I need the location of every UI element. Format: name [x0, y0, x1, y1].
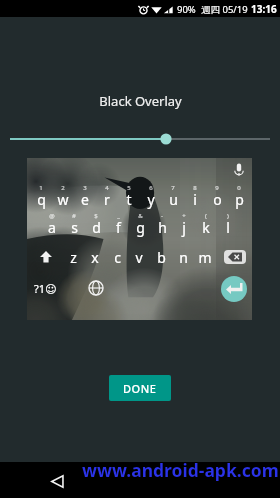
staticText: & — [138, 212, 143, 220]
staticText: d — [92, 218, 101, 237]
staticText: 9 — [215, 184, 219, 192]
staticText: f — [116, 218, 121, 237]
staticText: k — [202, 218, 210, 237]
staticText: 6 — [149, 184, 153, 192]
staticText: h — [158, 218, 167, 237]
staticText: l — [226, 218, 230, 237]
button[interactable]: Back — [51, 473, 75, 489]
staticText: w — [57, 190, 69, 209]
staticText: 週四 05/19 — [201, 3, 248, 16]
staticText: # — [72, 212, 76, 220]
staticText: 2 — [61, 184, 65, 192]
button[interactable] — [0, 129, 280, 149]
staticText: DONE — [123, 381, 157, 396]
staticText: t — [126, 190, 132, 209]
staticText: 5 — [127, 184, 131, 192]
staticText: ( — [205, 212, 207, 220]
staticText: n — [179, 248, 188, 267]
staticText: - — [161, 212, 163, 220]
staticText: j — [182, 218, 186, 237]
staticText: m — [198, 248, 212, 267]
staticText: 3 — [83, 184, 87, 192]
staticText: v — [135, 248, 143, 267]
staticText: r — [104, 190, 110, 209]
staticText: b — [157, 248, 166, 267]
staticText: a — [48, 218, 56, 237]
staticText: y — [147, 190, 155, 209]
staticText: o — [213, 190, 222, 209]
staticText: 8 — [193, 184, 197, 192]
staticText: p — [235, 190, 244, 209]
button[interactable]: DONE — [109, 375, 171, 401]
staticText: www.android-apk.com — [82, 458, 279, 482]
staticText: _ — [117, 212, 120, 220]
staticText: q — [37, 190, 46, 209]
staticText: e — [81, 190, 89, 209]
staticText: z — [70, 248, 77, 267]
staticText: 0 — [237, 184, 241, 192]
staticText: 90% — [177, 3, 196, 16]
staticText: s — [71, 218, 78, 237]
staticText: 4 — [105, 184, 109, 192]
staticText: @ — [49, 212, 55, 220]
button[interactable]: Keyboard preview — [27, 158, 252, 320]
staticText: $ — [94, 212, 98, 220]
staticText: i — [193, 190, 197, 209]
staticText: x — [91, 248, 99, 267]
staticText: 13:16 — [251, 2, 277, 16]
staticText: c — [114, 248, 121, 267]
staticText: ) — [227, 212, 229, 220]
staticText: + — [182, 212, 186, 220]
staticText: Black Overlay — [99, 92, 182, 110]
staticText: 1 — [39, 184, 43, 192]
staticText: u — [169, 190, 178, 209]
staticText: g — [136, 218, 145, 237]
staticText: ?1☺ — [34, 281, 57, 296]
staticText: 7 — [171, 184, 175, 192]
